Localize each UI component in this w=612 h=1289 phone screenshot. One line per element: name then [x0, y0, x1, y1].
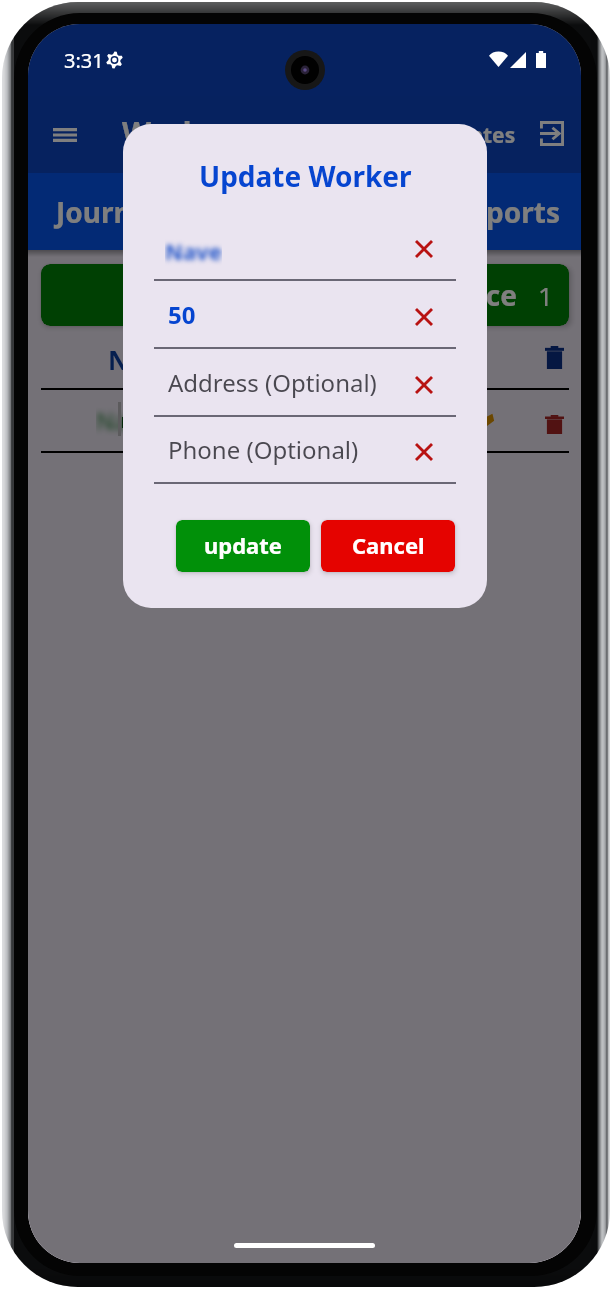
button[interactable]: Workplace: [41, 264, 569, 326]
button[interactable]: Cancel: [321, 520, 455, 572]
button[interactable]: Address (Optional): [154, 369, 456, 417]
staticText: Workers: [122, 112, 248, 153]
button[interactable]: update: [176, 520, 310, 572]
button[interactable]: Menu: [41, 114, 88, 155]
button[interactable]: Delete: [536, 339, 572, 375]
button[interactable]: Clear: [407, 435, 441, 469]
staticText: Nav: [96, 404, 140, 437]
staticText: 1: [538, 278, 553, 313]
staticText: Update Worker: [199, 157, 412, 195]
button[interactable]: Clear: [407, 300, 441, 334]
button[interactable]: Nav: [41, 391, 569, 451]
staticText: Name: [108, 342, 186, 377]
staticText: Nave: [165, 236, 222, 266]
staticText: 50: [168, 298, 196, 331]
button[interactable]: Clear: [407, 368, 441, 402]
staticText: Address (Optional): [168, 366, 377, 399]
staticText: Cancel: [352, 530, 425, 560]
staticText: Reports: [451, 193, 561, 231]
button[interactable]: Clear: [407, 232, 441, 266]
button[interactable]: Edit: [478, 413, 495, 430]
staticText: 3:31: [64, 47, 104, 74]
staticText: update: [204, 530, 282, 560]
staticText: Journal: [56, 193, 157, 231]
button[interactable]: Journal: [56, 173, 157, 250]
button[interactable]: Reports: [451, 173, 561, 250]
button[interactable]: Updates: [428, 118, 516, 152]
button[interactable]: Delete: [536, 406, 572, 442]
staticText: Workplace: [369, 276, 517, 314]
button[interactable]: Name: [41, 338, 569, 388]
staticText: Updates: [428, 121, 516, 150]
button[interactable]: Logout: [531, 112, 573, 154]
staticText: Phone (Optional): [168, 433, 359, 466]
button[interactable]: Nave: [154, 233, 456, 281]
button[interactable]: Phone (Optional): [154, 436, 456, 484]
button[interactable]: 50: [154, 301, 456, 349]
